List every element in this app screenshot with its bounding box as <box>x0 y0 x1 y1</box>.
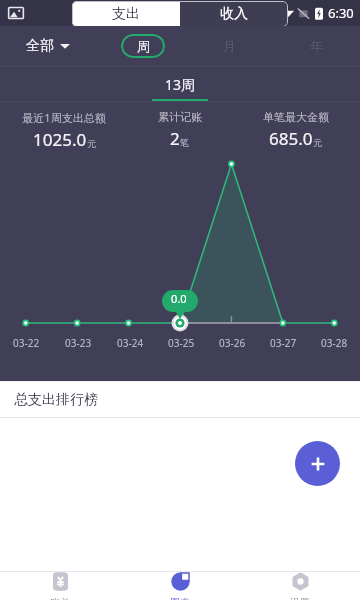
staticText: 685.0 <box>269 127 313 150</box>
button[interactable]: 13周 <box>147 71 214 98</box>
staticText: 支出 <box>112 5 140 23</box>
staticText: 单笔最大金额 <box>263 110 329 124</box>
staticText: 1025.0 <box>33 128 87 151</box>
staticText: 03-28 <box>321 336 348 350</box>
button[interactable]: 账单 <box>0 571 120 600</box>
staticText: 2 <box>170 127 180 150</box>
staticText: 收入 <box>220 5 248 23</box>
button[interactable]: 设置 <box>240 571 360 600</box>
staticText: 设置 <box>290 596 310 600</box>
staticText: 元 <box>313 137 322 148</box>
staticText: 0.0 <box>171 291 187 306</box>
button[interactable]: 图表 <box>120 571 240 600</box>
staticText: 13周 <box>165 75 196 94</box>
staticText: 年 <box>310 38 323 54</box>
staticText: 月 <box>223 38 236 54</box>
staticText: 周 <box>137 38 150 54</box>
staticText: 全部 <box>26 37 54 55</box>
button[interactable]: 支出 <box>72 1 180 27</box>
staticText: 03-22 <box>13 336 40 350</box>
staticText: 笔 <box>180 137 189 148</box>
staticText: 累计记账 <box>158 110 202 124</box>
staticText: 6:30 <box>328 4 354 22</box>
staticText: 03-27 <box>270 336 297 350</box>
staticText: 最近1周支出总额 <box>22 110 106 125</box>
staticText: 03-23 <box>65 336 92 350</box>
staticText: 账单 <box>50 596 70 600</box>
staticText: 元 <box>87 138 96 149</box>
staticText: 总支出排行榜 <box>14 391 98 409</box>
staticText: 03-24 <box>117 336 144 350</box>
button[interactable]: 周 <box>121 34 165 58</box>
button[interactable]: 收入 <box>180 1 288 27</box>
button[interactable]: 最近1周支出总额 <box>0 110 128 151</box>
button[interactable]: 单笔最大金额 <box>231 110 360 150</box>
button[interactable]: 累计记账 <box>128 110 231 150</box>
staticText: 图表 <box>170 596 190 600</box>
button[interactable]: Add <box>295 441 340 486</box>
staticText: 03-26 <box>219 336 246 350</box>
button[interactable]: 全部 <box>0 26 100 66</box>
staticText: 03-25 <box>168 336 195 350</box>
